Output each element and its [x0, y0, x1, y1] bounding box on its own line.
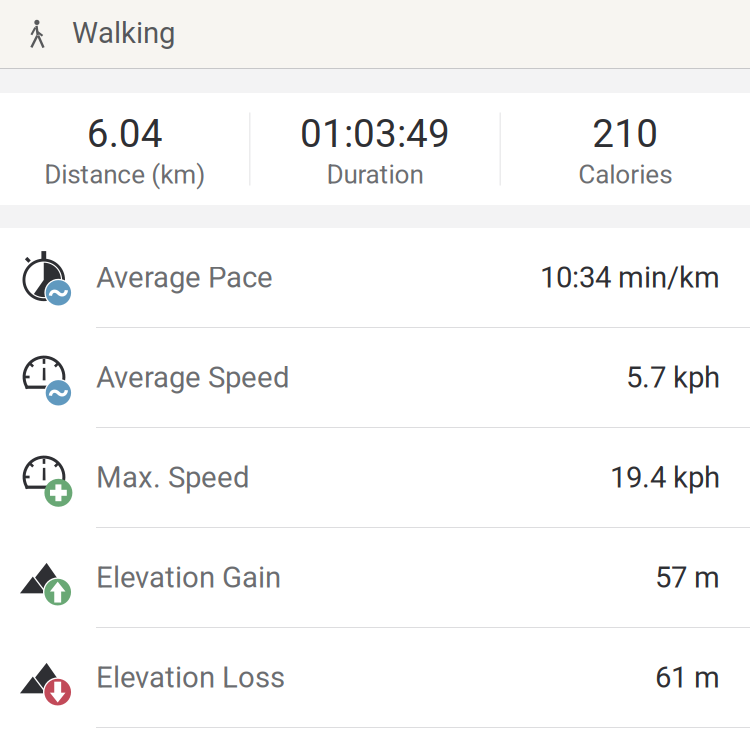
button[interactable]: Elevation Loss [0, 628, 750, 728]
staticText: 61 m [655, 660, 720, 695]
staticText: Distance (km) [44, 159, 205, 190]
staticText: Elevation Loss [96, 660, 285, 695]
staticText: Walking [72, 16, 175, 50]
staticText: Calories [578, 159, 672, 190]
staticText: 5.7 kph [626, 360, 720, 395]
button[interactable]: Average Speed [0, 328, 750, 428]
staticText: 210 [592, 111, 658, 156]
staticText: Duration [326, 159, 423, 190]
staticText: 19.4 kph [610, 460, 720, 495]
staticText: 6.04 [87, 111, 163, 156]
button[interactable]: Max. Speed [0, 428, 750, 528]
staticText: Elevation Gain [96, 560, 281, 595]
staticText: 10:34 min/km [540, 260, 720, 295]
staticText: 57 m [655, 560, 720, 595]
button[interactable]: Elevation Gain [0, 528, 750, 628]
staticText: Average Pace [96, 260, 273, 295]
staticText: Average Speed [96, 360, 290, 395]
staticText: 01:03:49 [300, 111, 450, 156]
staticText: Max. Speed [96, 460, 250, 495]
button[interactable]: Average Pace [0, 228, 750, 328]
